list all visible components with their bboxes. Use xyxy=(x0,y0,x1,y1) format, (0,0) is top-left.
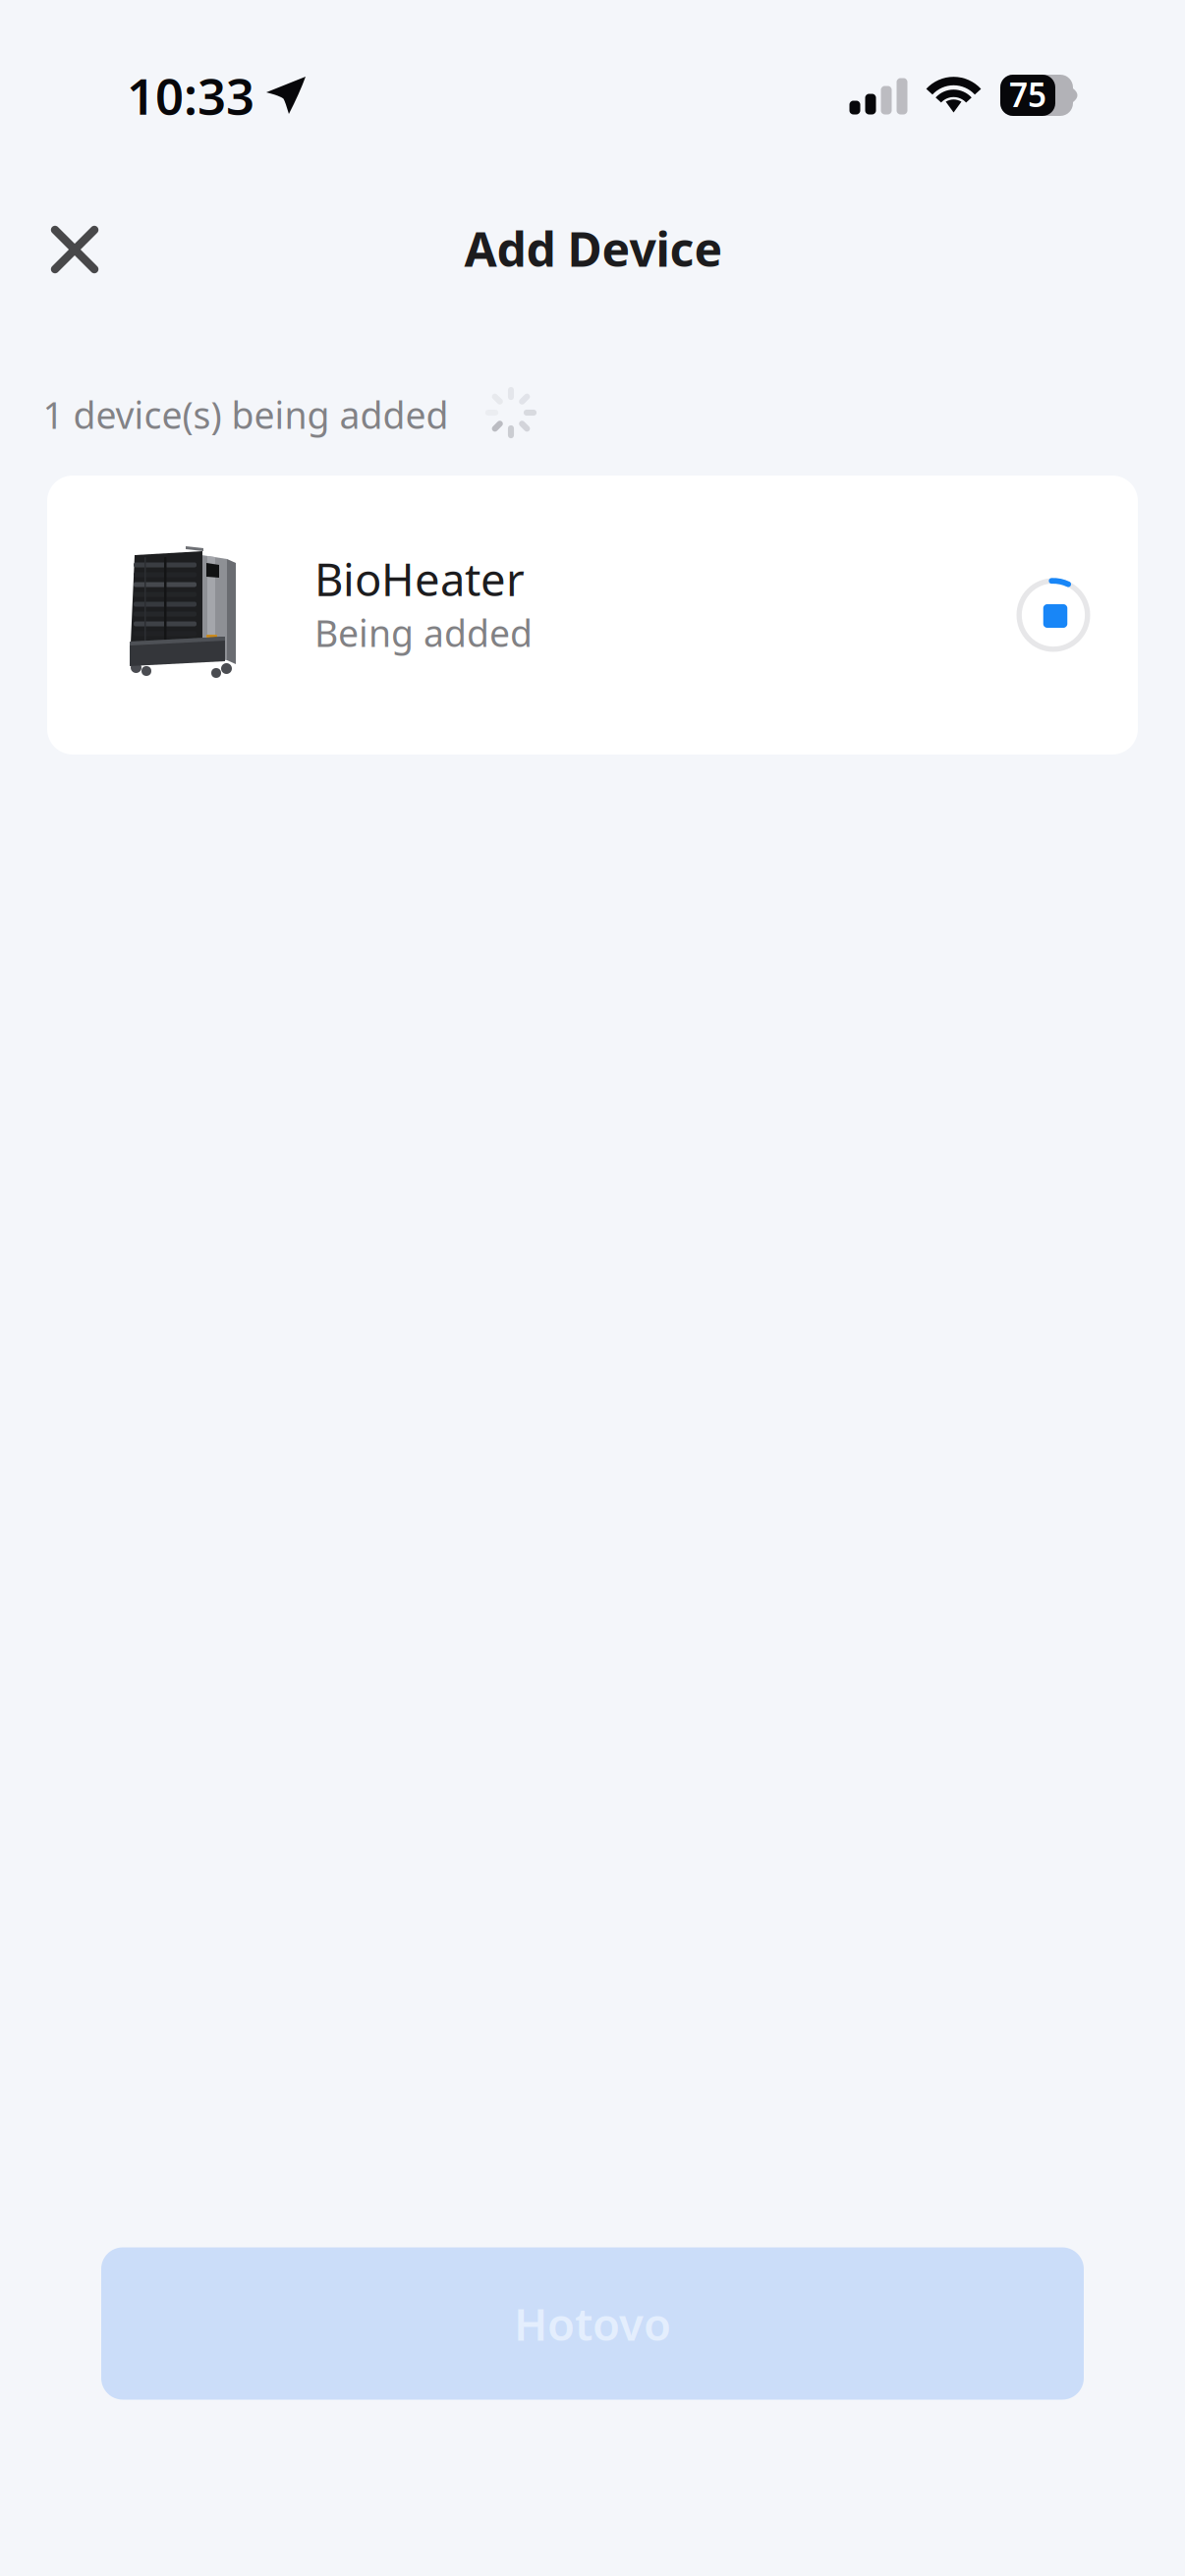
staticText: BioHeater xyxy=(314,549,525,608)
staticText: 10:33 xyxy=(127,62,254,128)
button[interactable]: BioHeater xyxy=(47,476,1138,755)
staticText: 75 xyxy=(1009,73,1046,116)
button[interactable]: Stop adding BioHeater xyxy=(1006,568,1100,662)
staticText: Hotovo xyxy=(514,2294,671,2353)
staticText: 1 device(s) being added xyxy=(43,390,449,439)
button[interactable]: Hotovo xyxy=(101,2247,1084,2400)
button[interactable]: Close xyxy=(28,202,122,297)
staticText: Add Device xyxy=(464,217,723,280)
staticText: Being added xyxy=(314,608,533,657)
